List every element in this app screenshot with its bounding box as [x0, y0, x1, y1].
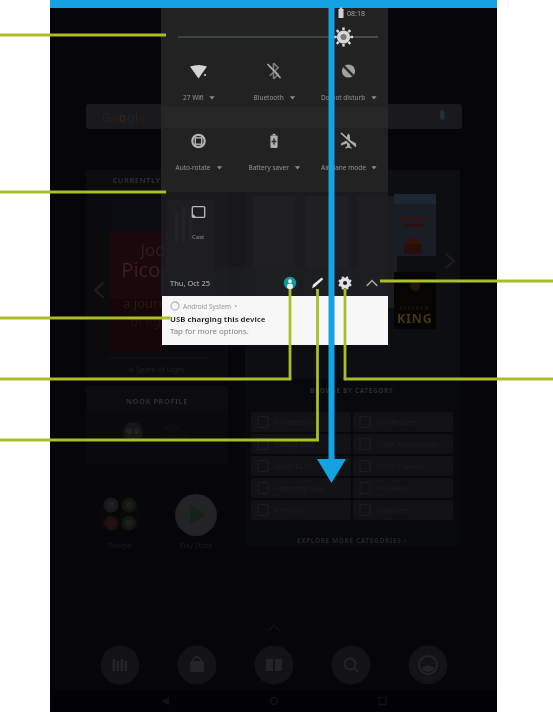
button[interactable]: Recent apps	[370, 690, 396, 712]
button[interactable]: NOOK profile: Miles	[86, 386, 228, 464]
button[interactable]: Currently reading: A Spark of Light	[86, 170, 228, 378]
button[interactable]: Auto-rotate	[161, 120, 237, 176]
button[interactable]: Play Store	[175, 494, 217, 536]
button[interactable]: Bluetooth	[237, 50, 313, 106]
button[interactable]: User profile	[279, 272, 301, 294]
button[interactable]: Reading now	[255, 646, 293, 684]
button[interactable]: Book carousel	[245, 170, 460, 378]
button[interactable]: Shop	[178, 646, 216, 684]
button[interactable]: Back	[152, 690, 178, 712]
button[interactable]: Google folder	[99, 493, 141, 535]
button[interactable]: Battery saver	[237, 120, 313, 176]
button[interactable]: Settings	[334, 272, 356, 294]
button[interactable]: Browse by category	[245, 378, 460, 546]
button[interactable]: Home	[261, 690, 287, 712]
button[interactable]: Airplane mode	[313, 120, 388, 176]
button[interactable]: Library	[101, 646, 139, 684]
button[interactable]: Edit tiles	[306, 272, 328, 294]
button[interactable]: Do not disturb	[313, 50, 388, 106]
button[interactable]: Wi-Fi, 27 Wifi	[161, 50, 237, 106]
button[interactable]: Search	[332, 646, 370, 684]
button[interactable]: Google search	[86, 104, 462, 129]
button[interactable]: USB charging this device. Tap for more o…	[162, 296, 388, 345]
button[interactable]: Cast	[161, 192, 237, 248]
button[interactable]: Brightness	[170, 26, 380, 48]
button[interactable]: NOOK	[409, 646, 447, 684]
button[interactable]: Collapse panel	[361, 272, 383, 294]
